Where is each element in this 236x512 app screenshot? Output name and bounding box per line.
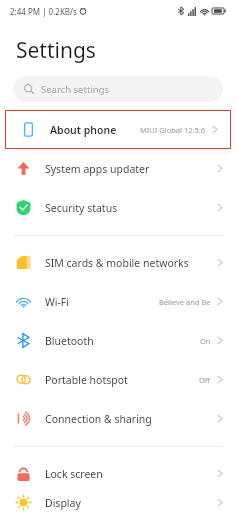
staticText: 2:44 PM | 0.2KB/s [10,6,77,17]
staticText: Search settings [41,83,110,96]
button[interactable]: Security status [0,188,236,227]
staticText: About phone [50,123,117,137]
button[interactable]: Connection & sharing [0,399,236,438]
staticText: Portable hotspot [45,373,128,387]
button[interactable]: Bluetooth [0,321,236,360]
button[interactable]: Wi-Fi [0,282,236,321]
button[interactable]: Portable hotspot [0,360,236,399]
staticText: MIUI Global 12.5.6 [140,125,206,135]
button[interactable]: Display [0,493,236,512]
staticText: System apps updater [45,162,150,176]
staticText: SIM cards & mobile networks [45,256,189,270]
staticText: Lock screen [45,467,103,481]
staticText: Bluetooth [45,334,94,348]
staticText: Wi-Fi [45,295,70,309]
button[interactable]: Lock screen [0,454,236,493]
button[interactable]: About phone [5,110,231,149]
staticText: Off [199,375,211,385]
staticText: Security status [45,201,118,215]
staticText: On [200,336,211,346]
staticText: Connection & sharing [45,412,152,426]
staticText: Settings [16,36,96,65]
button[interactable]: System apps updater [0,149,236,188]
staticText: Believe and Be [159,297,211,307]
button[interactable]: Search settings [13,76,223,102]
staticText: Display [45,496,81,510]
button[interactable]: SIM cards & mobile networks [0,243,236,282]
